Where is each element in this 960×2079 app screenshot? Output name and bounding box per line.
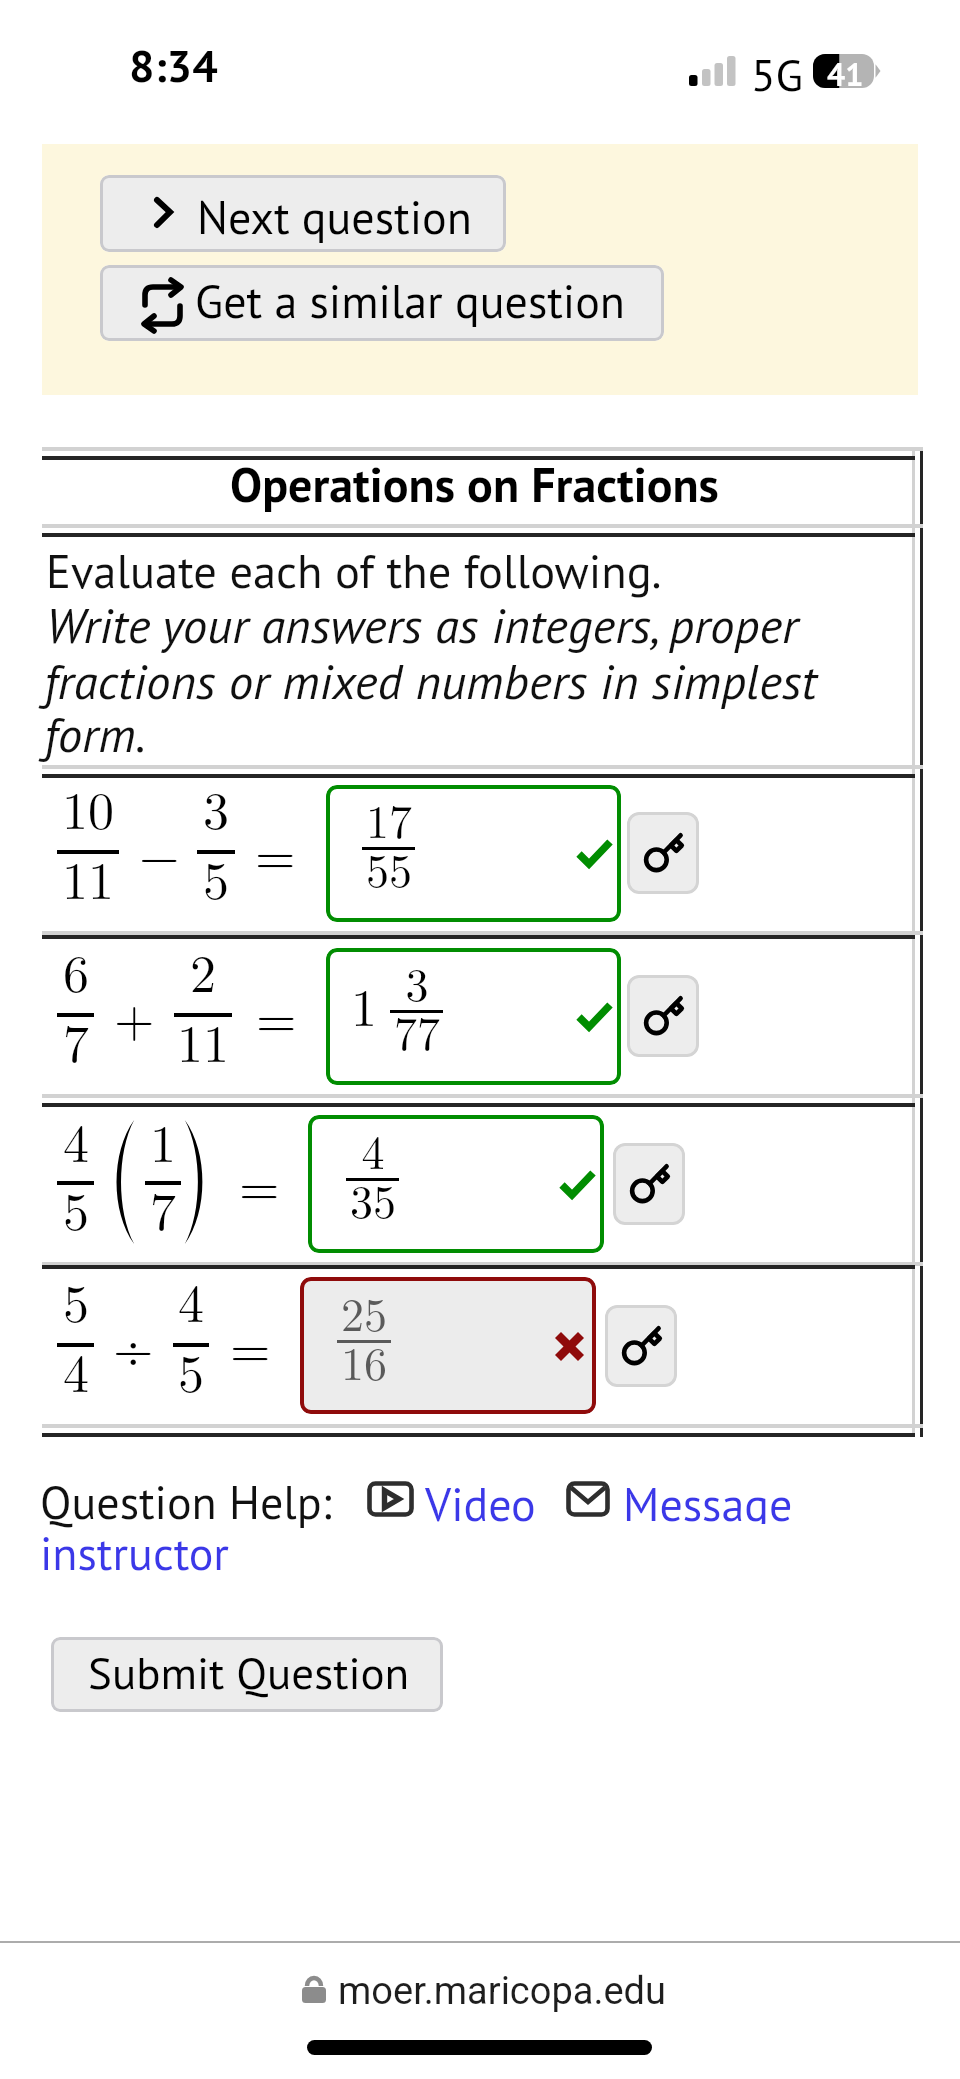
button[interactable]: Show answer key [605, 1305, 677, 1387]
staticText: 2 [143, 933, 263, 1007]
staticText: 77 [357, 998, 477, 1063]
staticText: Get a similar question [195, 271, 626, 331]
staticText: 7 [16, 1003, 136, 1077]
button[interactable]: Next question [100, 175, 506, 252]
staticText: 4 [313, 1117, 433, 1182]
staticText: 11 [143, 1003, 263, 1077]
staticText: ÷ [113, 1308, 154, 1382]
staticText: 35 [313, 1166, 433, 1231]
button[interactable]: Show answer key [613, 1143, 685, 1225]
button[interactable]: Answer field [326, 948, 621, 1085]
staticText: − [139, 815, 180, 889]
button[interactable]: Answer field [308, 1115, 604, 1253]
staticText: Operations on Fractions [230, 453, 719, 515]
staticText: = [230, 1308, 271, 1382]
staticText: 4 [16, 1103, 136, 1177]
button[interactable]: Show answer key [627, 975, 699, 1057]
button[interactable]: instructor [40, 1523, 230, 1583]
button[interactable]: Answer field [326, 785, 621, 922]
staticText: 4 [16, 1333, 136, 1407]
staticText: Next question [197, 187, 472, 247]
staticText: Message [623, 1474, 793, 1524]
staticText: 6 [16, 933, 136, 1007]
staticText: 5 [131, 1333, 251, 1407]
staticText: 17 [329, 786, 449, 851]
staticText: fractions or mixed numbers in simplest [44, 649, 817, 712]
staticText: 8:34 [129, 36, 218, 94]
button[interactable]: Message [566, 1474, 793, 1524]
staticText: 25 [304, 1279, 424, 1344]
staticText: 55 [329, 835, 449, 900]
button[interactable]: Get a similar question [100, 265, 664, 341]
staticText: Question Help: [40, 1472, 332, 1532]
staticText: = [255, 815, 296, 889]
staticText: Submit Question [88, 1643, 410, 1701]
staticText: 3 [156, 770, 276, 844]
staticText: = [239, 1146, 280, 1220]
button[interactable]: Video [367, 1474, 536, 1524]
staticText: 5 [16, 1263, 136, 1337]
staticText: Write your answers as integers, proper [46, 593, 799, 656]
staticText: Video [425, 1474, 536, 1524]
staticText: moer.maricopa.edu [338, 1969, 666, 2014]
staticText: 5 [156, 840, 276, 914]
staticText: 1 [103, 1103, 223, 1177]
staticText: form. [44, 702, 146, 765]
staticText: 10 [28, 770, 148, 844]
staticText: 5 [16, 1171, 136, 1245]
staticText: 7 [103, 1171, 223, 1245]
staticText: 4 [131, 1263, 251, 1337]
button[interactable]: Show answer key [627, 812, 699, 894]
staticText: + [114, 978, 155, 1052]
staticText: 11 [28, 840, 148, 914]
button[interactable]: Answer field [300, 1277, 596, 1414]
staticText: Evaluate each of the following. [46, 541, 662, 601]
staticText: 3 [357, 949, 477, 1014]
staticText: 16 [304, 1328, 424, 1393]
staticText: 41 [827, 53, 864, 94]
button[interactable]: Submit Question [51, 1637, 443, 1712]
staticText: = [256, 978, 297, 1052]
staticText: 1 [351, 967, 378, 1041]
staticText: 5G [751, 45, 804, 103]
